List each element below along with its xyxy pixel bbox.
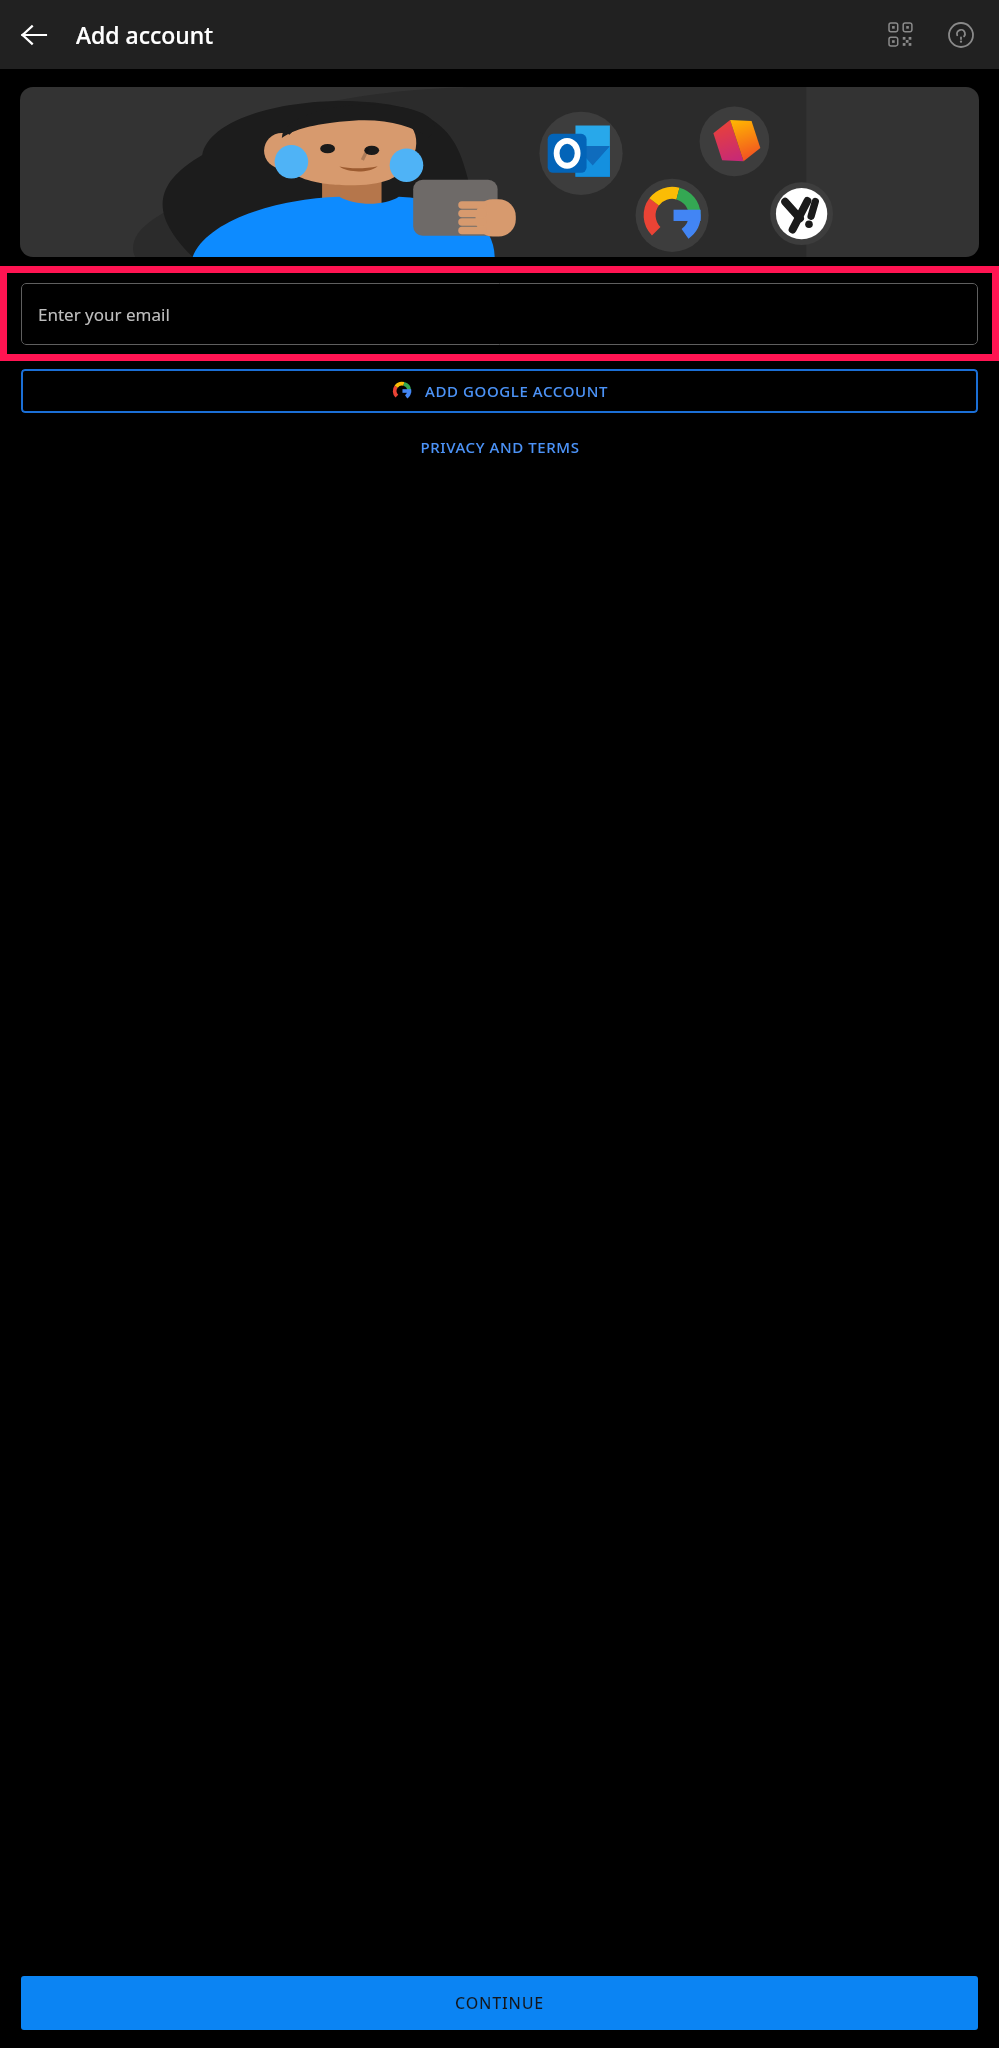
staticText: CONTINUE	[455, 1992, 544, 2014]
button[interactable]: Back	[10, 11, 58, 59]
button[interactable]: CONTINUE	[21, 1976, 978, 2030]
button[interactable]: ADD GOOGLE ACCOUNT	[21, 369, 978, 413]
button[interactable]: Scan QR code	[877, 11, 925, 59]
staticText: Add account	[76, 19, 214, 50]
staticText: PRIVACY AND TERMS	[420, 437, 580, 457]
button[interactable]: PRIVACY AND TERMS	[406, 431, 594, 463]
button[interactable]: Help	[937, 11, 985, 59]
staticText: ADD GOOGLE ACCOUNT	[425, 381, 608, 401]
staticText: Enter your email	[38, 303, 170, 326]
button[interactable]: Enter your email	[21, 283, 978, 345]
